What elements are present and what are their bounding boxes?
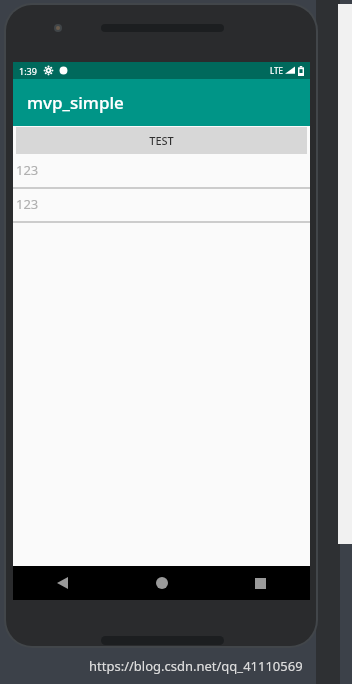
button[interactable]: Back <box>13 566 112 600</box>
button[interactable]: TEST <box>16 127 307 154</box>
button[interactable]: Home <box>112 566 211 600</box>
staticText: https://blog.csdn.net/qq_41110569 <box>89 657 303 675</box>
staticText: 1:39 <box>19 65 37 77</box>
staticText: 123 <box>16 195 39 213</box>
staticText: TEST <box>149 133 174 148</box>
button[interactable]: 123 <box>13 189 310 223</box>
button[interactable]: Recent apps <box>211 566 310 600</box>
staticText: mvp_simple <box>27 91 124 114</box>
staticText: 123 <box>16 161 39 179</box>
button[interactable]: mvp_simple <box>13 79 310 126</box>
staticText: LTE <box>270 65 283 76</box>
button[interactable]: 123 <box>13 155 310 189</box>
